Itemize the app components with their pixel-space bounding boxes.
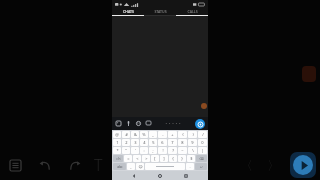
button[interactable]: CALLS [176,8,208,15]
button[interactable]: Keyboard [145,120,152,127]
button[interactable]: ~ [178,147,187,154]
staticText: ? [172,148,174,153]
staticText: ⌫ [199,157,204,161]
button[interactable]: * [113,147,121,154]
staticText: ] [163,156,165,161]
staticText: 9 [191,140,194,145]
staticText: ! [162,148,164,153]
button[interactable]: Play [293,155,313,175]
button[interactable]: Enter [195,163,207,170]
button[interactable]: CHATS [112,8,144,15]
button[interactable]: ' [131,147,139,154]
button[interactable]: ! [158,147,167,154]
staticText: 3 [134,140,137,145]
button[interactable]: Back [130,172,138,180]
button[interactable]: Rewind [36,156,54,174]
button[interactable]: \ [188,147,197,154]
staticText: 1 [116,140,119,145]
button[interactable]: Symbols [113,155,123,162]
button[interactable]: 9 [188,139,197,146]
button[interactable]: [ [151,155,159,162]
staticText: 5 [152,140,155,145]
staticText: & [134,132,137,137]
button[interactable]: ☺ [136,163,144,170]
button[interactable]: - [158,131,167,138]
button[interactable]: 8 [178,139,187,146]
button[interactable]: 7 [168,139,177,146]
button[interactable]: : [140,147,148,154]
staticText: ↵ [200,165,203,169]
button[interactable]: ( [178,131,187,138]
button[interactable]: { [169,155,177,162]
button[interactable]: ? [168,147,177,154]
button[interactable]: Send [195,119,205,129]
staticText: % [142,132,146,137]
staticText: . [189,164,191,169]
staticText: STATUS [154,9,167,14]
button[interactable]: / [198,131,207,138]
staticText: } [181,156,183,161]
staticText: ) [192,132,194,137]
button[interactable]: 5 [149,139,157,146]
button[interactable]: } [178,155,186,162]
button[interactable]: Backspace [196,155,207,162]
button[interactable]: > [142,155,150,162]
button[interactable]: & [131,131,139,138]
staticText: 6 [161,140,164,145]
staticText: | [201,148,204,153]
button[interactable]: . [186,163,194,170]
staticText: @ [115,132,119,137]
button[interactable]: Recents [182,172,190,180]
button[interactable]: 2 [122,139,130,146]
button[interactable]: Forward [66,156,84,174]
button[interactable]: = [124,155,132,162]
staticText: =\< [116,157,121,161]
staticText: 0 [201,140,204,145]
staticText: CHATS [123,9,134,14]
staticText: = [127,156,130,161]
button[interactable]: 1 [113,139,121,146]
button[interactable]: _ [149,131,157,138]
staticText: - [162,132,164,137]
staticText: " [125,148,127,153]
button[interactable]: 4 [140,139,148,146]
button[interactable]: ; [149,147,157,154]
button[interactable]: STATUS [144,8,176,15]
button[interactable]: 6 [158,139,167,146]
staticText: ; [152,148,154,153]
staticText: < [136,156,139,161]
button[interactable]: # [122,131,130,138]
staticText: ( [182,132,184,137]
button[interactable]: % [140,131,148,138]
staticText: 8 [181,140,184,145]
button[interactable]: @ [113,131,121,138]
staticText: 7 [171,140,174,145]
button[interactable]: , [127,163,135,170]
button[interactable]: Playlist [6,156,24,174]
button[interactable]: 3 [131,139,139,146]
button[interactable]: $ [187,155,195,162]
button[interactable]: " [122,147,130,154]
button[interactable]: | [198,147,207,154]
button[interactable]: ] [160,155,168,162]
button[interactable]: 0 [198,139,207,146]
button[interactable]: Voice [125,120,132,127]
staticText: ~ [181,148,184,153]
button[interactable]: + [168,131,177,138]
staticText: : [143,148,145,153]
staticText: ☺ [138,164,143,169]
staticText: 4 [143,140,146,145]
button[interactable]: Letters [113,163,126,170]
button[interactable]: < [133,155,141,162]
staticText: , [130,164,132,169]
button[interactable]: Emoji [135,120,142,127]
button[interactable]: Space [145,163,185,170]
button[interactable]: Home [156,172,164,180]
button[interactable]: ) [188,131,197,138]
staticText: CALLS [187,9,198,14]
staticText: / [202,132,204,137]
staticText: + [171,132,174,137]
button[interactable]: Gallery [115,120,122,127]
